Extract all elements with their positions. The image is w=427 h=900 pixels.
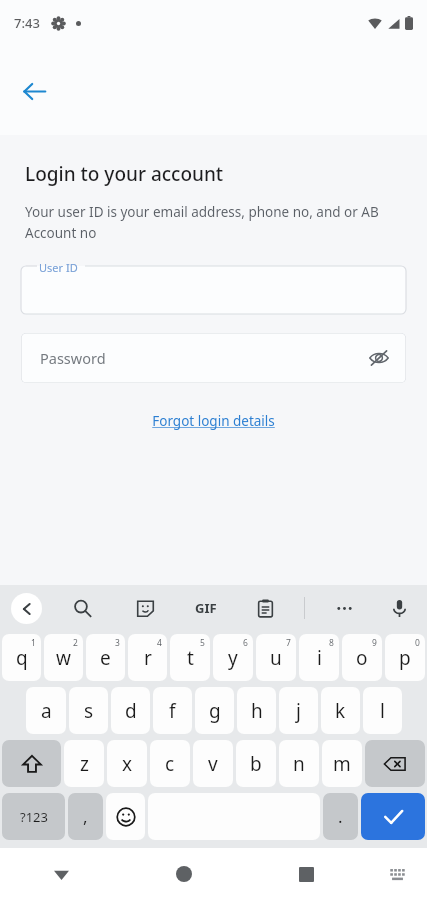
button[interactable]: d [111,687,150,734]
button[interactable]: GIF [192,596,220,620]
button[interactable]: Voice input [384,593,414,623]
staticText: k [335,698,346,724]
staticText: j [296,698,301,724]
staticText: 6 [243,637,248,649]
staticText: Forgot login details [152,412,275,430]
button[interactable]: o [342,634,382,681]
button[interactable]: q [2,634,41,681]
button[interactable]: , [68,793,103,840]
staticText: e [100,645,111,671]
button[interactable]: g [195,687,234,734]
button[interactable]: ?123 [2,793,65,840]
staticText: d [125,698,137,724]
button[interactable]: t [170,634,210,681]
button[interactable]: l [363,687,402,734]
button[interactable]: w [44,634,83,681]
staticText: c [165,751,175,777]
staticText: ?123 [20,808,48,826]
staticText: 4 [157,637,162,649]
button[interactable]: a [26,687,66,734]
button[interactable]: v [193,740,233,787]
staticText: Password [40,348,106,368]
button[interactable] [21,266,406,314]
staticText: Your user ID is your email address, phon… [25,203,403,242]
button[interactable]: Home [123,848,245,900]
staticText: 9 [372,637,377,649]
button[interactable]: s [69,687,108,734]
staticText: a [41,698,52,724]
button[interactable]: Back [0,848,123,900]
button[interactable]: Emoji [106,793,145,840]
button[interactable]: Backspace [365,740,425,787]
staticText: User ID [39,260,78,275]
staticText: h [251,698,263,724]
button[interactable]: u [256,634,296,681]
staticText: 7:43 [14,14,40,32]
button[interactable]: j [279,687,318,734]
button[interactable]: Enter [361,793,425,840]
button[interactable]: f [153,687,192,734]
staticText: t [187,645,194,671]
staticText: b [250,751,262,777]
staticText: 7 [286,637,291,649]
button[interactable]: h [237,687,276,734]
button[interactable]: y [213,634,253,681]
staticText: , [83,805,88,828]
staticText: n [293,751,305,777]
staticText: x [122,751,133,777]
staticText: Login to your account [25,161,224,187]
staticText: o [356,645,368,671]
button[interactable]: Shift [2,740,61,787]
staticText: r [144,645,152,671]
staticText: 2 [73,637,78,649]
staticText: m [333,751,351,777]
button[interactable]: Stickers [130,593,160,623]
button[interactable]: r [128,634,167,681]
staticText: v [208,751,218,777]
button[interactable]: z [64,740,104,787]
button[interactable]: Forgot login details [146,409,281,433]
staticText: f [169,698,176,724]
button[interactable]: p [385,634,425,681]
button[interactable]: m [322,740,362,787]
button[interactable]: Clipboard [250,593,280,623]
button[interactable]: More options [329,593,359,623]
button[interactable]: Search [67,593,97,623]
button[interactable]: x [107,740,147,787]
button[interactable]: Back [10,67,58,115]
button[interactable]: i [299,634,339,681]
button[interactable]: Recents [245,848,367,900]
staticText: . [338,805,343,828]
staticText: y [228,645,238,671]
staticText: z [80,751,89,777]
staticText: w [56,645,71,671]
staticText: 1 [31,637,36,649]
staticText: 0 [415,637,420,649]
staticText: 8 [329,637,334,649]
staticText: l [380,698,385,724]
staticText: 3 [115,637,120,649]
staticText: u [270,645,282,671]
button[interactable]: Show password [360,339,398,377]
staticText: q [16,645,28,671]
button[interactable]: b [236,740,276,787]
staticText: GIF [195,599,217,617]
button[interactable]: e [86,634,125,681]
staticText: p [399,645,411,671]
button[interactable]: Password [21,333,406,383]
button[interactable]: k [321,687,360,734]
button[interactable]: Switch keyboard [367,848,427,900]
staticText: g [209,698,221,724]
button[interactable]: Back [11,593,42,624]
staticText: 5 [200,637,205,649]
button[interactable]: . [323,793,358,840]
button[interactable]: n [279,740,319,787]
staticText: s [84,698,94,724]
button[interactable]: c [150,740,190,787]
staticText: i [317,645,322,671]
